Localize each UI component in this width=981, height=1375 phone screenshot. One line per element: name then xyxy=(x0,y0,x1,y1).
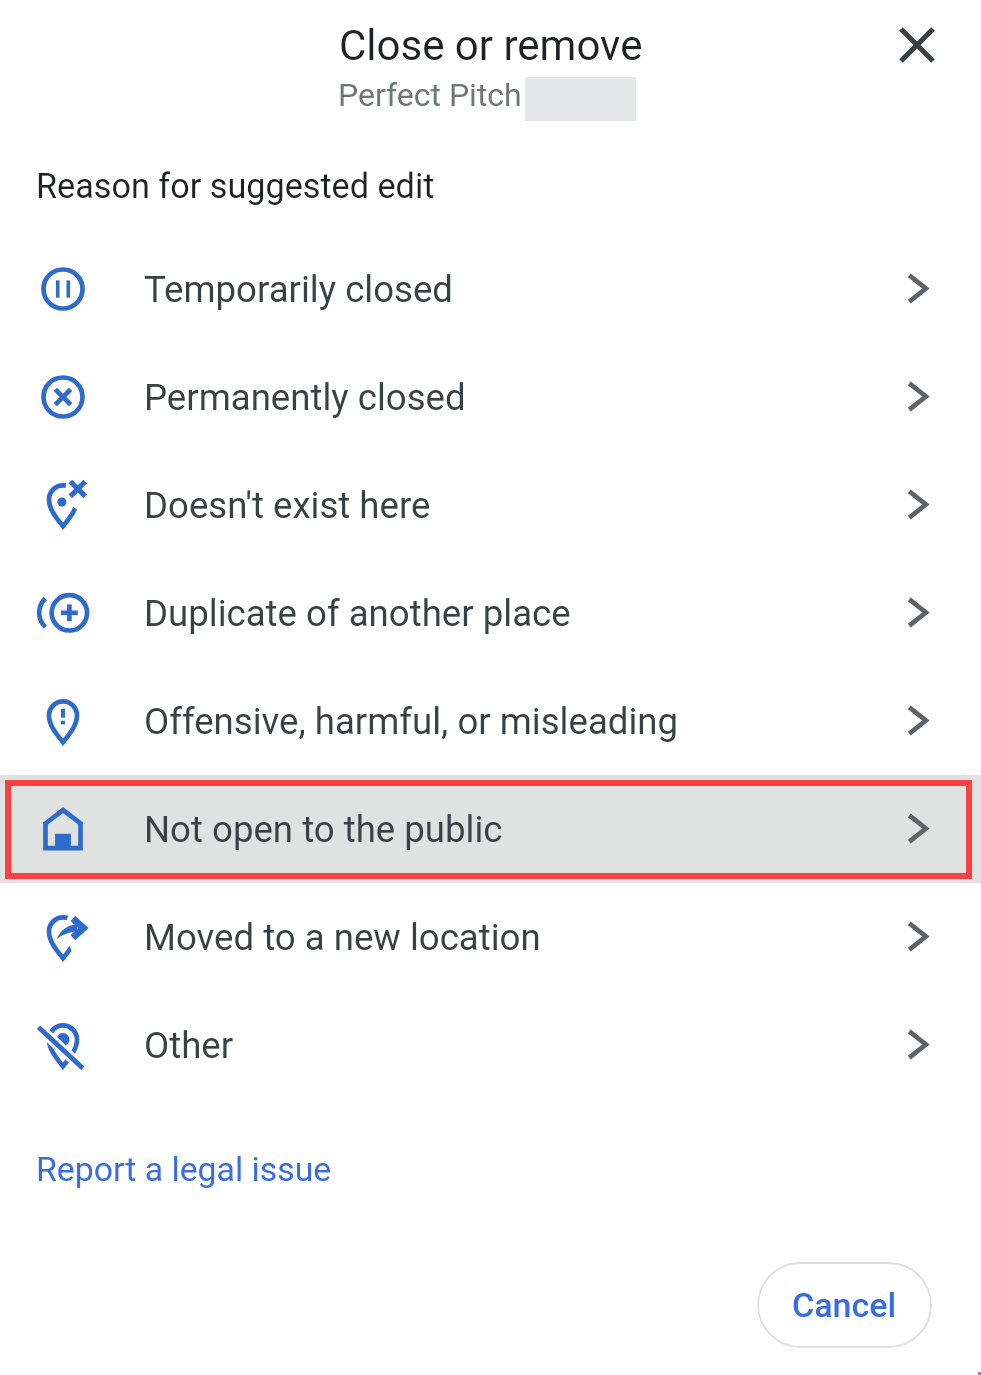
staticText: Close or remove xyxy=(339,21,643,70)
staticText: Not open to the public xyxy=(144,808,503,851)
staticText: Cancel xyxy=(792,1285,897,1325)
button[interactable]: Not open to the public xyxy=(0,775,981,883)
staticText: Moved to a new location xyxy=(144,916,541,959)
button[interactable]: Doesn't exist here xyxy=(0,451,981,559)
button[interactable]: Temporarily closed xyxy=(0,235,981,343)
button[interactable]: Report a legal issue xyxy=(36,1145,376,1193)
staticText: Temporarily closed xyxy=(144,268,454,311)
button[interactable]: Permanently closed xyxy=(0,343,981,451)
button[interactable]: Close xyxy=(881,9,953,81)
button[interactable]: Other xyxy=(0,991,981,1099)
staticText: Other xyxy=(144,1024,234,1067)
staticText: Doesn't exist here xyxy=(144,484,431,527)
staticText: Perfect Pitch xyxy=(338,76,522,114)
staticText: Report a legal issue xyxy=(36,1150,332,1190)
button[interactable]: Cancel xyxy=(757,1262,932,1348)
staticText: Permanently closed xyxy=(144,376,466,419)
button[interactable]: Offensive, harmful, or misleading xyxy=(0,667,981,775)
button[interactable]: Duplicate of another place xyxy=(0,559,981,667)
staticText: Reason for suggested edit xyxy=(36,166,435,206)
staticText: Duplicate of another place xyxy=(144,592,571,635)
staticText: Offensive, harmful, or misleading xyxy=(144,700,679,743)
button[interactable]: Moved to a new location xyxy=(0,883,981,991)
